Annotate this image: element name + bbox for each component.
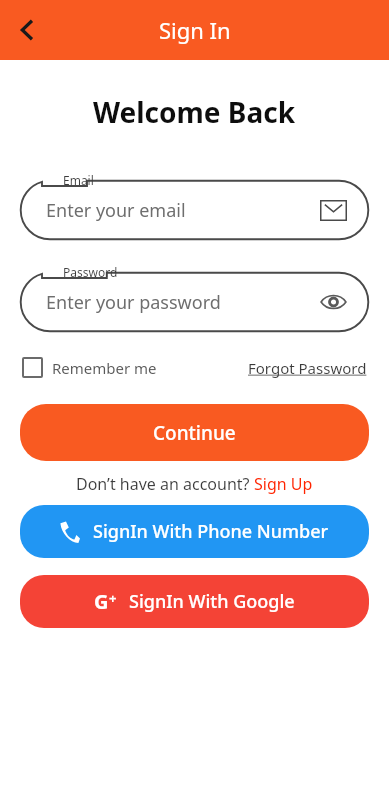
staticText: Don’t have an account? — [76, 473, 254, 495]
button[interactable]: SignIn With Phone Number — [20, 505, 369, 558]
other: Email — [320, 200, 347, 221]
staticText: Welcome Back — [93, 93, 296, 131]
button[interactable]: G — [20, 575, 369, 628]
button[interactable]: Continue — [20, 404, 369, 461]
button[interactable]: Forgot Password — [248, 358, 367, 378]
button[interactable]: Sign Up — [254, 473, 313, 495]
staticText: Enter your password — [46, 290, 221, 315]
staticText: Enter your email — [46, 198, 186, 223]
staticText: Password — [63, 264, 118, 280]
staticText: Remember me — [52, 358, 157, 378]
staticText: + — [109, 589, 117, 607]
other: Show password — [320, 293, 347, 311]
staticText: Sign In — [159, 15, 231, 45]
staticText: Forgot Password — [248, 358, 367, 378]
staticText: SignIn With Phone Number — [93, 519, 329, 544]
staticText: SignIn With Google — [129, 589, 295, 614]
button[interactable]: Remember me — [22, 357, 157, 378]
button[interactable]: Enter your email — [20, 180, 369, 240]
staticText: Continue — [153, 420, 236, 446]
staticText: Email — [63, 172, 94, 188]
button[interactable]: Enter your password — [20, 272, 369, 332]
staticText: G — [94, 588, 109, 615]
staticText: Sign Up — [254, 473, 313, 495]
button[interactable]: Back — [6, 8, 50, 52]
